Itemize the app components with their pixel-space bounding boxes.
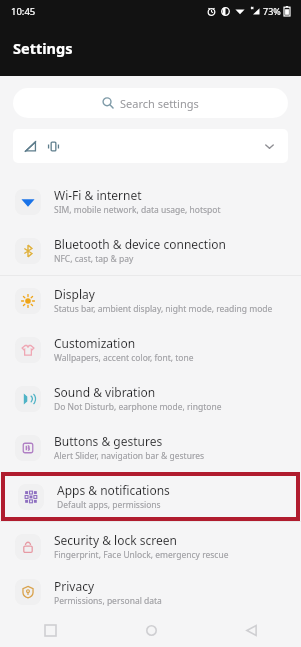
staticText: 73% — [263, 5, 281, 17]
staticText: 10:45 — [11, 5, 36, 18]
staticText: Permissions, personal data — [54, 595, 162, 607]
staticText: Default apps, permissions — [57, 499, 161, 511]
staticText: Bluetooth & device connection — [54, 236, 226, 252]
staticText: SIM, mobile network, data usage, hotspot — [54, 204, 221, 216]
staticText: Settings — [13, 38, 73, 58]
staticText: Do Not Disturb, earphone mode, ringtone — [54, 401, 222, 413]
staticText: Apps & notifications — [57, 482, 170, 498]
button[interactable]: Customization — [0, 325, 301, 374]
staticText: Customization — [54, 335, 136, 351]
other: Expand — [261, 138, 277, 154]
button[interactable]: Sound & vibration — [0, 374, 301, 423]
button[interactable]: Apps & notifications — [3, 472, 298, 521]
staticText: Buttons & gestures — [54, 433, 163, 449]
staticText: Wallpapers, accent color, font, tone — [54, 352, 194, 364]
staticText: Privacy — [54, 578, 95, 594]
button[interactable]: Back — [201, 613, 301, 647]
button[interactable]: Buttons & gestures — [0, 423, 301, 472]
staticText: Display — [54, 286, 95, 302]
staticText: Status bar, ambient display, night mode,… — [54, 303, 273, 315]
button[interactable]: Privacy — [0, 571, 301, 613]
staticText: Security & lock screen — [54, 532, 177, 548]
button[interactable]: Home — [101, 613, 201, 647]
staticText: Sound & vibration — [54, 384, 156, 400]
button[interactable]: Expand — [13, 129, 288, 163]
staticText: NFC, cast, tap & pay — [54, 253, 134, 265]
button[interactable]: Wi-Fi & internet — [0, 177, 301, 226]
button[interactable]: Search settings — [13, 88, 288, 118]
staticText: Search settings — [120, 96, 199, 111]
button[interactable]: Bluetooth & device connection — [0, 226, 301, 275]
button[interactable]: Recent apps — [0, 613, 101, 647]
button[interactable]: Display — [0, 276, 301, 325]
staticText: Fingerprint, Face Unlock, emergency resc… — [54, 549, 229, 561]
button[interactable]: Security & lock screen — [0, 522, 301, 571]
staticText: Alert Slider, navigation bar & gestures — [54, 450, 205, 462]
staticText: Wi-Fi & internet — [54, 187, 142, 203]
